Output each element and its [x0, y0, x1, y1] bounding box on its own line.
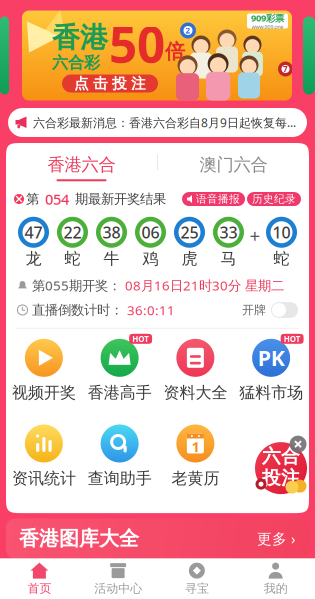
staticText: 鸡 — [142, 249, 158, 268]
staticText: 视频开奖 — [12, 383, 76, 402]
button[interactable]: 资讯统计 — [6, 424, 82, 488]
button[interactable]: 寻宝 — [157, 562, 236, 596]
staticText: 澳门六合 — [199, 154, 267, 175]
staticText: 22 — [63, 222, 81, 243]
button[interactable]: 香港图库大全 — [0, 518, 315, 558]
button[interactable]: PK — [233, 339, 309, 402]
staticText: 36:0:11 — [127, 301, 175, 319]
staticText: 蛇 — [64, 249, 80, 268]
staticText: HOT — [284, 333, 301, 344]
staticText: 六合彩最新消息：香港六合彩自8月9日起恢复每周揽珠 — [33, 114, 300, 130]
staticText: 牛 — [103, 249, 119, 268]
button[interactable]: HOT — [82, 339, 158, 402]
staticText: 第 — [26, 191, 39, 207]
staticText: 语音播报 — [196, 192, 240, 206]
staticText: 我的 — [264, 581, 288, 596]
button[interactable]: 六合彩最新消息：香港六合彩自8月9日起恢复每周揽珠 — [0, 104, 315, 137]
staticText: 25 — [180, 222, 198, 243]
staticText: 活动中心 — [94, 581, 142, 596]
staticText: 更多 › — [257, 529, 296, 548]
staticText: 蛇 — [273, 249, 289, 268]
button[interactable]: 开牌 — [242, 302, 298, 318]
staticText: 资料大全 — [163, 383, 227, 402]
staticText: 倍 — [165, 39, 185, 64]
button[interactable]: 六合投注 — [253, 435, 307, 489]
staticText: 38 — [102, 222, 120, 243]
staticText: HOT — [132, 333, 149, 344]
staticText: 虎 — [181, 249, 197, 268]
staticText: 第055期开奖： — [32, 276, 121, 294]
staticText: 909彩票 — [251, 12, 284, 24]
staticText: 资讯统计 — [12, 468, 76, 488]
staticText: 06 — [141, 222, 159, 243]
button[interactable]: 我的 — [236, 562, 315, 596]
staticText: + — [249, 223, 260, 248]
button[interactable]: 首页 — [0, 562, 79, 596]
staticText: 点 击 投 注 — [74, 74, 146, 92]
staticText: 投注 — [262, 467, 300, 489]
staticText: 六合彩 — [52, 53, 100, 73]
staticText: 马 — [220, 249, 236, 268]
staticText: 054 — [41, 189, 73, 209]
button[interactable]: 查询助手 — [82, 424, 158, 488]
button[interactable]: 1 — [157, 424, 233, 488]
staticText: 香港六合 — [47, 154, 115, 175]
button[interactable]: 澳门六合 — [158, 143, 309, 181]
staticText: 直播倒数计时： — [32, 302, 123, 318]
staticText: 47 — [24, 222, 42, 243]
staticText: 10 — [272, 222, 290, 243]
staticText: 33 — [219, 222, 237, 243]
button[interactable]: 香港六合 — [6, 143, 157, 181]
button[interactable]: 活动中心 — [79, 562, 158, 596]
staticText: PK — [258, 344, 285, 372]
button[interactable]: 关闭 — [289, 435, 307, 453]
button[interactable]: 语音播报 — [182, 192, 245, 206]
staticText: 香港高手 — [88, 383, 152, 402]
staticText: 50 — [109, 11, 165, 76]
staticText: 08月16日21时30分 星期二 — [125, 276, 284, 294]
button[interactable]: 历史纪录 — [247, 192, 301, 206]
staticText: 龙 — [25, 249, 41, 268]
staticText: 香港图库大全 — [19, 526, 139, 551]
staticText: 开牌 — [242, 303, 266, 317]
staticText: 1 — [191, 437, 199, 456]
staticText: 查询助手 — [88, 468, 152, 488]
button[interactable]: 资料大全 — [157, 339, 233, 402]
staticText: 7 — [283, 64, 288, 74]
staticText: 首页 — [27, 581, 51, 596]
staticText: 2 — [185, 25, 190, 36]
button[interactable]: 视频开奖 — [6, 339, 82, 402]
staticText: www.909.one — [251, 23, 283, 30]
staticText: 六合 — [262, 445, 300, 468]
staticText: 期最新开奖结果 — [75, 191, 166, 207]
staticText: 香港 — [52, 20, 108, 55]
staticText: 寻宝 — [185, 581, 209, 596]
staticText: 老黄历 — [171, 468, 219, 488]
staticText: 历史纪录 — [252, 192, 296, 206]
staticText: 猛料市场 — [239, 383, 303, 402]
button[interactable]: 2 — [0, 10, 315, 100]
